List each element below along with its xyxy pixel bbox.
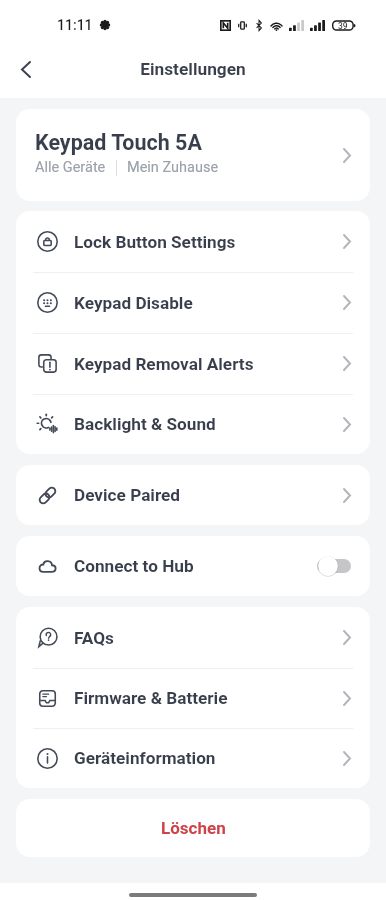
staticText: Keypad Removal Alerts xyxy=(74,354,254,374)
staticText: Keypad Disable xyxy=(74,293,193,313)
button[interactable]: Connect to Hub xyxy=(317,555,351,577)
button[interactable]: Firmware & Batterie xyxy=(16,668,370,728)
button[interactable]: Backlight & Sound xyxy=(16,394,370,454)
staticText: Alle Geräte xyxy=(35,159,106,176)
staticText: Mein Zuhause xyxy=(127,159,219,176)
button[interactable]: Device Paired xyxy=(16,465,370,525)
staticText: FAQs xyxy=(74,628,114,648)
button[interactable]: Lock Button Settings xyxy=(16,211,370,272)
staticText: Einstellungen xyxy=(140,59,246,79)
button[interactable]: Keypad Removal Alerts xyxy=(16,333,370,394)
staticText: Backlight & Sound xyxy=(74,414,216,434)
staticText: 11:11 xyxy=(57,17,93,33)
button[interactable]: Keypad Touch 5A xyxy=(16,109,370,201)
button[interactable]: FAQs xyxy=(16,607,370,668)
staticText: Firmware & Batterie xyxy=(74,688,228,708)
staticText: Geräteinformation xyxy=(74,748,216,768)
staticText: Lock Button Settings xyxy=(74,232,236,252)
button[interactable]: Keypad Disable xyxy=(16,272,370,333)
staticText: 39 xyxy=(338,21,348,31)
button[interactable]: Connect to Hub xyxy=(16,536,370,596)
staticText: Keypad Touch 5A xyxy=(35,130,202,155)
staticText: Löschen xyxy=(161,818,226,838)
button[interactable]: Back xyxy=(10,53,42,85)
staticText: Connect to Hub xyxy=(74,556,194,576)
button[interactable]: Löschen xyxy=(16,799,370,857)
staticText: Device Paired xyxy=(74,485,181,505)
button[interactable]: Geräteinformation xyxy=(16,728,370,788)
